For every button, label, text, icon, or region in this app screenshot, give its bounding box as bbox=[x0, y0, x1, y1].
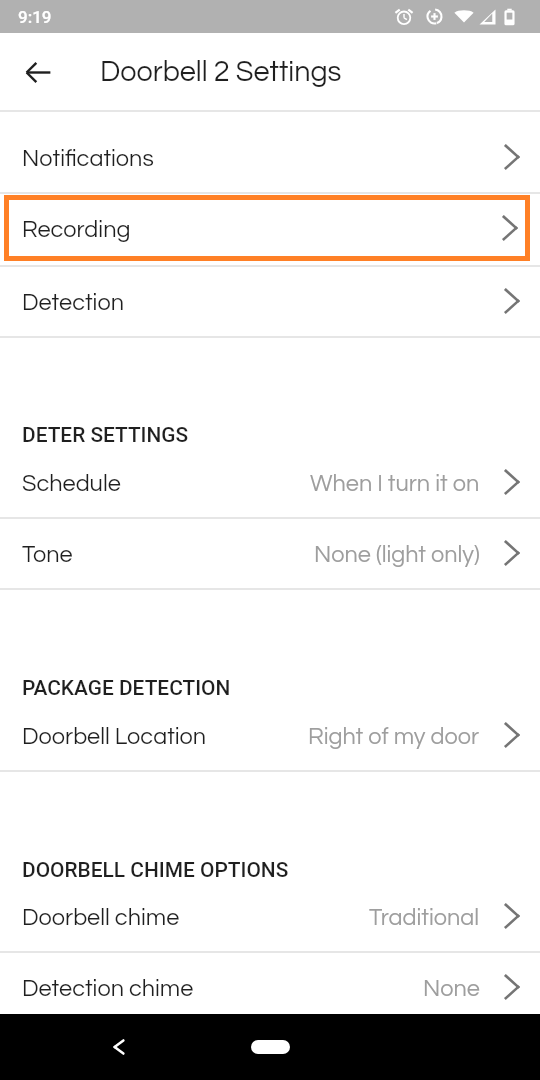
staticText: Tone bbox=[22, 543, 73, 567]
staticText: PACKAGE DETECTION bbox=[22, 676, 231, 700]
button[interactable]: Notifications bbox=[0, 122, 540, 192]
button[interactable]: Back bbox=[98, 1026, 140, 1068]
staticText: When I turn it on bbox=[310, 472, 480, 496]
button[interactable]: Schedule bbox=[0, 446, 540, 517]
staticText: Traditional bbox=[369, 906, 480, 930]
button[interactable]: Back bbox=[16, 50, 60, 94]
button[interactable]: Tone bbox=[0, 517, 540, 588]
button[interactable]: Doorbell Location bbox=[0, 699, 540, 770]
staticText: Detection chime bbox=[22, 977, 194, 1001]
staticText: Doorbell chime bbox=[22, 906, 180, 930]
staticText: Detection bbox=[22, 291, 124, 315]
button[interactable]: Recording bbox=[4, 195, 530, 261]
staticText: Schedule bbox=[22, 472, 121, 496]
button[interactable]: Detection chime bbox=[0, 951, 540, 1022]
staticText: 9:19 bbox=[18, 7, 52, 27]
staticText: DETER SETTINGS bbox=[22, 423, 189, 447]
staticText: Doorbell 2 Settings bbox=[100, 57, 342, 87]
button[interactable]: Detection bbox=[0, 265, 540, 336]
staticText: Notifications bbox=[22, 147, 154, 171]
staticText: None (light only) bbox=[314, 543, 480, 567]
button[interactable]: Home bbox=[240, 1032, 300, 1062]
staticText: None bbox=[423, 977, 480, 1001]
staticText: Recording bbox=[22, 218, 131, 242]
staticText: DOORBELL CHIME OPTIONS bbox=[22, 858, 289, 882]
staticText: Doorbell Location bbox=[22, 725, 207, 749]
staticText: Right of my door bbox=[308, 725, 480, 749]
button[interactable]: Doorbell chime bbox=[0, 880, 540, 951]
